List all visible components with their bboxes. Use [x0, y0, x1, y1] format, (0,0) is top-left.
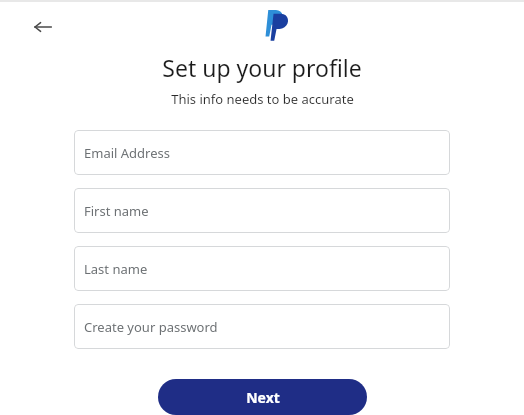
staticText: First name	[84, 202, 149, 220]
staticText: Next	[246, 388, 280, 407]
staticText: Create your password	[84, 318, 218, 336]
button[interactable]: Next	[158, 379, 367, 415]
staticText: Last name	[84, 260, 148, 278]
staticText: Set up your profile	[162, 52, 362, 83]
button[interactable]: Create your password	[74, 304, 450, 349]
button[interactable]: Last name	[74, 246, 450, 291]
button[interactable]: First name	[74, 188, 450, 233]
staticText: Email Address	[84, 144, 170, 162]
staticText: This info needs to be accurate	[171, 90, 354, 108]
button[interactable]: Back	[26, 10, 60, 44]
button[interactable]: Email Address	[74, 130, 450, 175]
